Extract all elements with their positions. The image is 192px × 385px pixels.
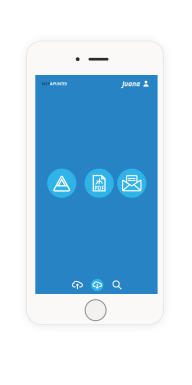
button[interactable]: Email	[117, 169, 146, 198]
button[interactable]: Google Drive	[47, 169, 76, 198]
button[interactable]: Juana — account	[122, 79, 149, 88]
button[interactable]: Upload	[72, 281, 83, 289]
staticText: MIS	[42, 81, 50, 86]
button[interactable]: PDF	[85, 169, 114, 198]
staticText: Juana	[122, 79, 140, 88]
staticText: APUNTES	[50, 81, 67, 86]
button[interactable]: Search	[112, 280, 122, 290]
button[interactable]: Download	[91, 279, 103, 291]
staticText: PDF	[94, 184, 104, 191]
